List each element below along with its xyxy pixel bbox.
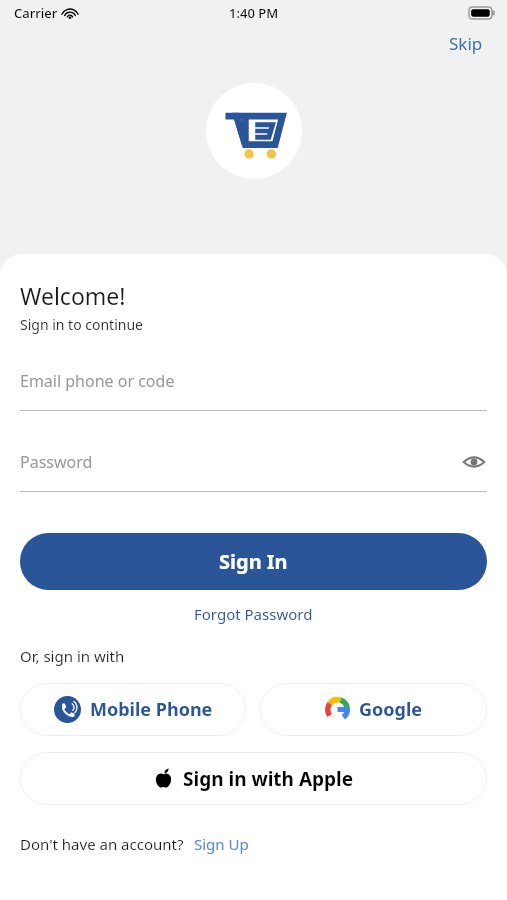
button[interactable]: Sign In — [20, 533, 487, 590]
staticText: Or, sign in with — [20, 646, 125, 666]
button[interactable]: Sign Up — [190, 831, 253, 857]
staticText: Skip — [449, 32, 483, 55]
staticText: Google — [359, 697, 423, 722]
staticText: Password — [20, 451, 93, 473]
staticText: 1:40 PM — [229, 4, 279, 22]
button[interactable]: Password — [20, 447, 487, 492]
staticText: Mobile Phone — [90, 697, 213, 722]
staticText: Don't have an account? — [20, 834, 184, 854]
other: Show password — [461, 449, 487, 475]
staticText: Sign in with Apple — [183, 766, 354, 792]
button[interactable]: Forgot Password — [184, 600, 323, 628]
button[interactable]: Email phone or code — [20, 366, 487, 411]
button[interactable]: Mobile Phone — [20, 683, 246, 736]
button[interactable]: Sign in with Apple — [20, 752, 487, 805]
button[interactable]: Skip — [443, 28, 489, 59]
staticText: Sign Up — [194, 834, 249, 854]
staticText: Forgot Password — [194, 604, 313, 624]
staticText: Sign in to continue — [20, 315, 143, 334]
staticText: Email phone or code — [20, 370, 175, 392]
staticText: Carrier — [14, 4, 58, 22]
button[interactable]: Google — [260, 683, 487, 736]
staticText: Welcome! — [20, 280, 126, 311]
staticText: Sign In — [219, 548, 288, 575]
